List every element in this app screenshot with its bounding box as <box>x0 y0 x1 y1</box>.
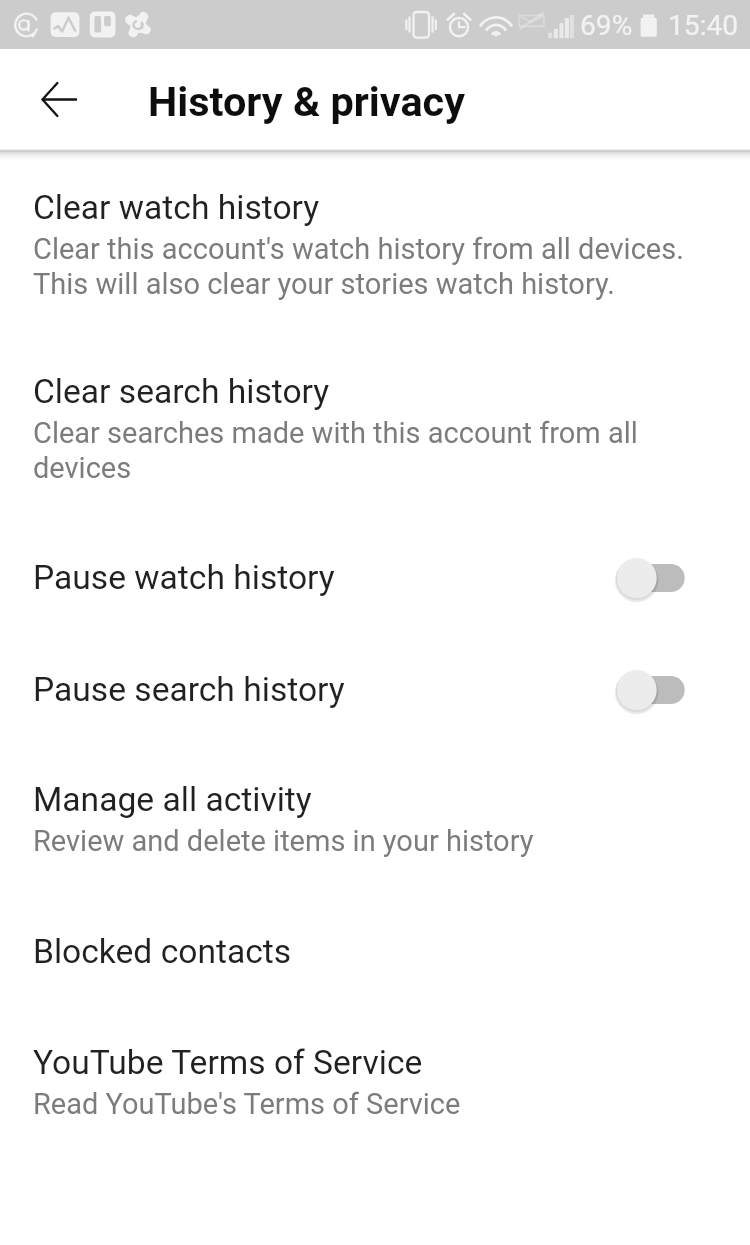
staticText: Read YouTube's Terms of Service <box>33 1087 461 1121</box>
staticText: Blocked contacts <box>33 932 292 971</box>
button[interactable]: Pause search history <box>0 670 750 710</box>
button[interactable]: Navigate up <box>42 49 77 149</box>
staticText: Review and delete items in your history <box>33 824 534 858</box>
button[interactable]: Pause watch history <box>0 558 750 598</box>
staticText: Clear this account's watch history from … <box>33 232 703 301</box>
staticText: History & privacy <box>148 78 465 127</box>
staticText: Manage all activity <box>33 780 312 819</box>
button[interactable]: Clear search history <box>0 372 750 485</box>
button[interactable]: YouTube Terms of Service <box>0 1043 750 1121</box>
button[interactable]: Clear watch history <box>0 188 750 301</box>
staticText: Pause watch history <box>33 558 335 597</box>
staticText: Pause search history <box>33 670 345 709</box>
staticText: Clear search history <box>33 372 330 411</box>
staticText: 15:40 <box>668 9 739 42</box>
button[interactable]: Toggle <box>594 670 750 710</box>
button[interactable]: Toggle <box>594 558 750 598</box>
staticText: 69% <box>580 9 633 42</box>
button[interactable]: Manage all activity <box>0 780 750 858</box>
staticText: Clear searches made with this account fr… <box>33 416 703 485</box>
staticText: Clear watch history <box>33 188 320 227</box>
button[interactable]: Blocked contacts <box>0 932 750 971</box>
staticText: YouTube Terms of Service <box>33 1043 423 1082</box>
